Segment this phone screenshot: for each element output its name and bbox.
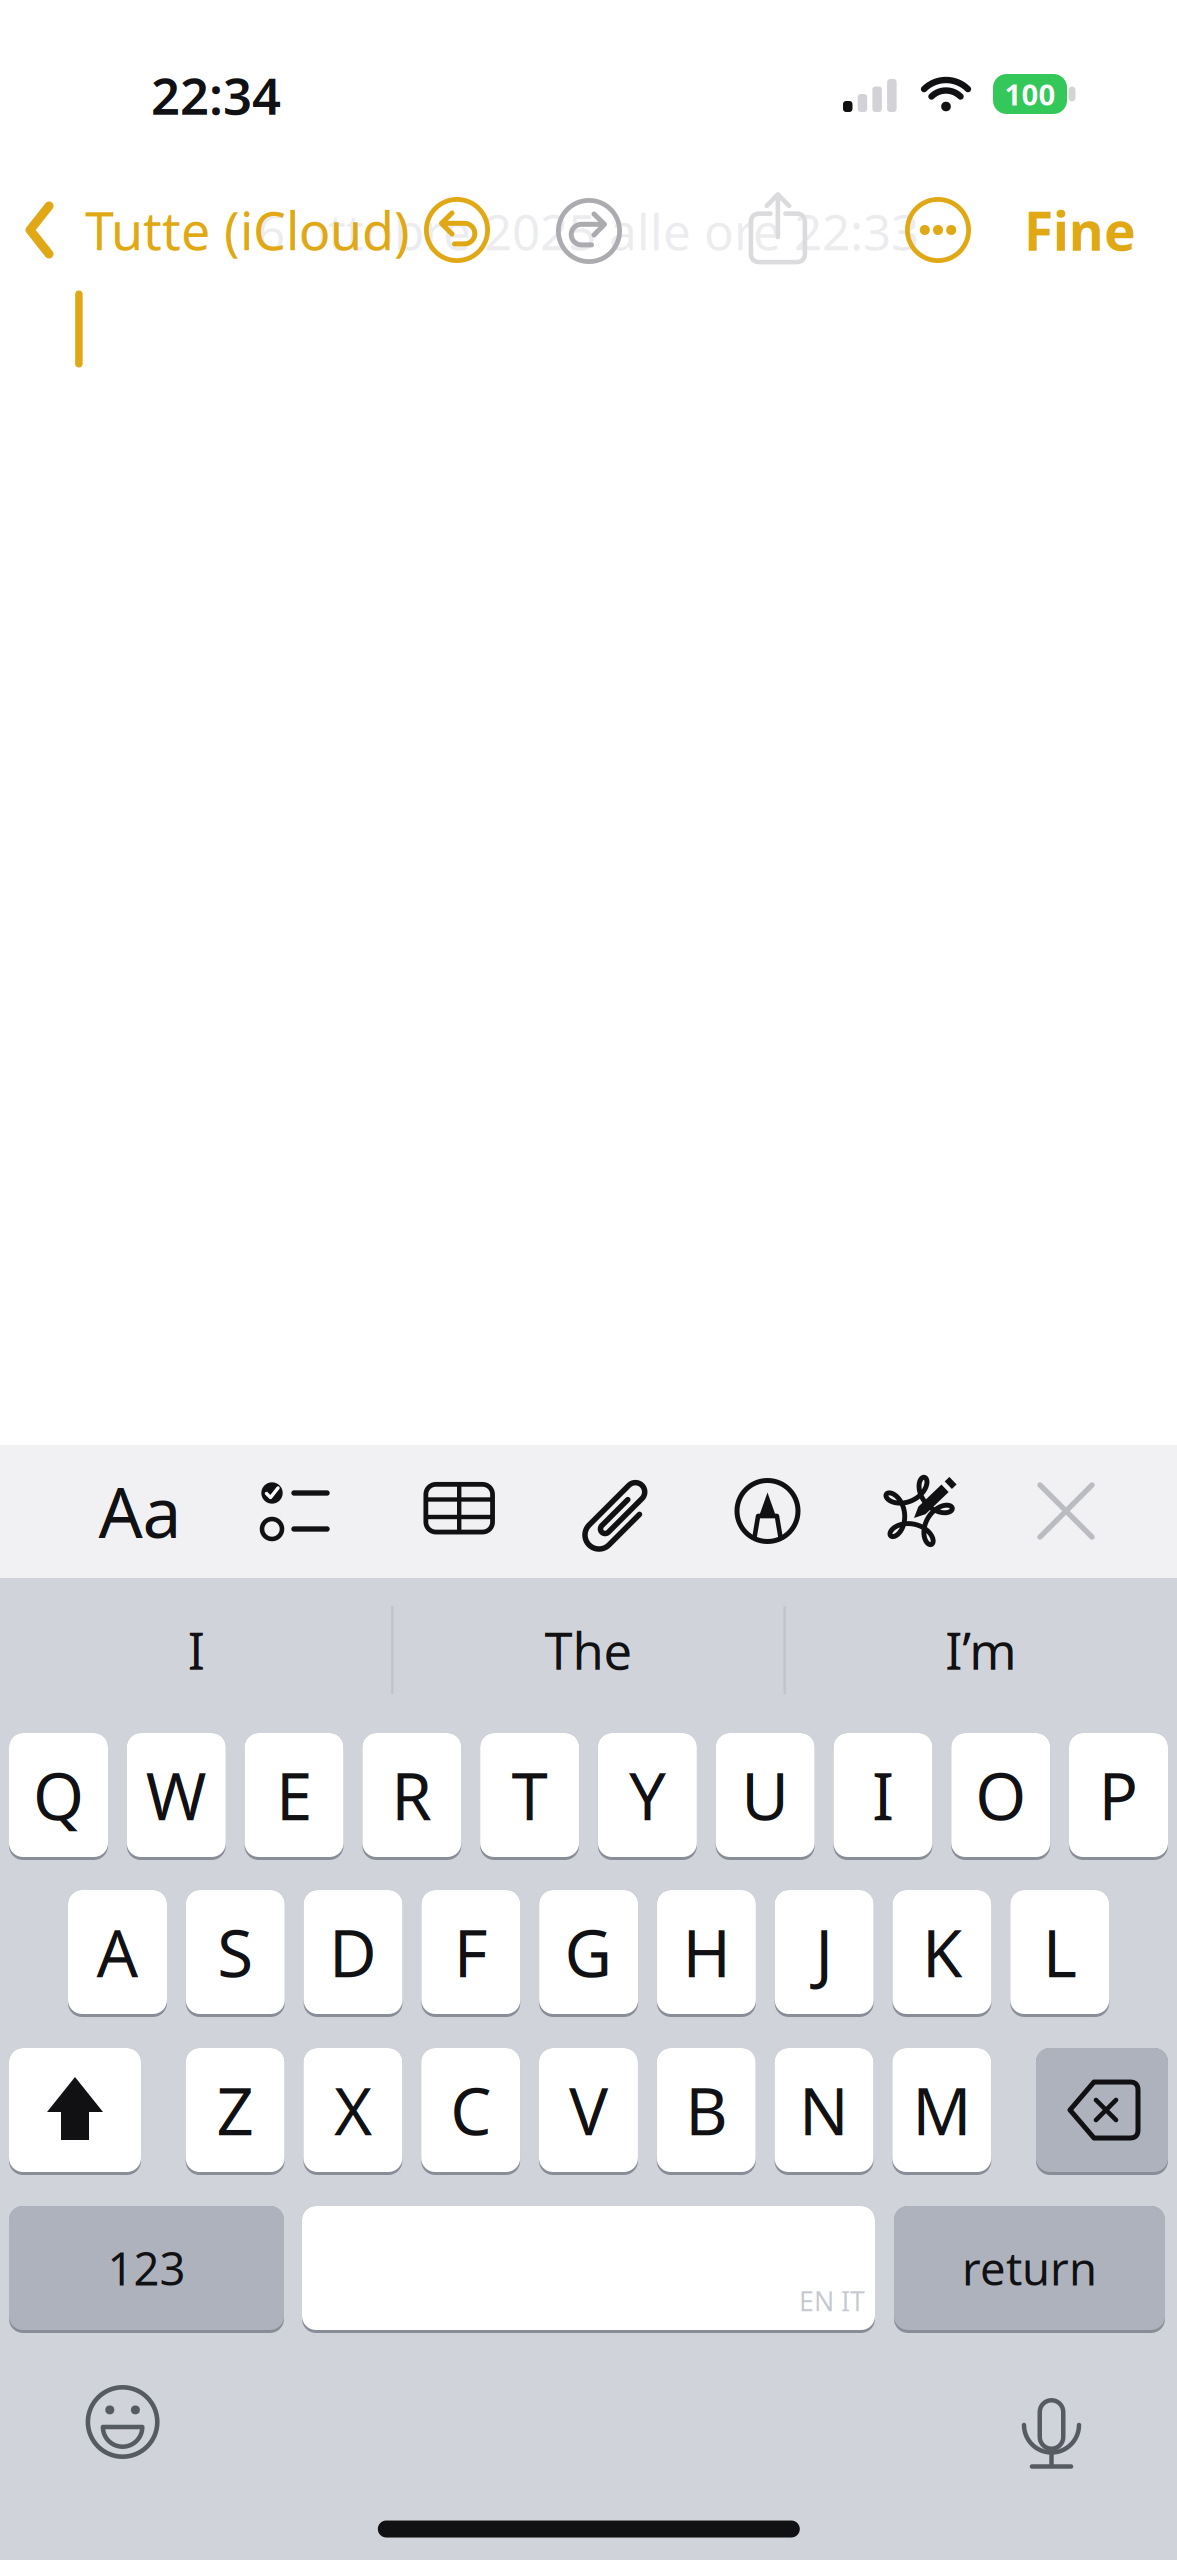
button[interactable]: V	[539, 2048, 638, 2175]
staticText: V	[569, 2067, 608, 2153]
button[interactable]: Format	[85, 1456, 195, 1566]
staticText: P	[1098, 1752, 1138, 1838]
button[interactable]: Emoji	[78, 2377, 168, 2467]
button[interactable]: R	[362, 1733, 461, 1860]
button[interactable]: Dictate	[1006, 2387, 1096, 2487]
button[interactable]: Checklist	[250, 1466, 340, 1556]
button[interactable]: O	[951, 1733, 1050, 1860]
staticText: Fine	[1024, 195, 1136, 265]
button[interactable]: Fine	[1024, 195, 1136, 265]
staticText: H	[682, 1909, 730, 1995]
staticText: G	[565, 1909, 613, 1995]
button[interactable]: shift	[9, 2048, 141, 2175]
button[interactable]: I	[833, 1733, 932, 1860]
button[interactable]: Y	[598, 1733, 697, 1860]
button[interactable]: 123	[9, 2206, 284, 2333]
button[interactable]: Tutte (iCloud)	[24, 194, 424, 266]
button[interactable]: K	[892, 1890, 991, 2017]
staticText: F	[454, 1909, 488, 1995]
button[interactable]: Q	[9, 1733, 108, 1860]
staticText: O	[975, 1752, 1026, 1838]
staticText: I’m	[945, 1616, 1016, 1684]
staticText: EN IT	[799, 2283, 865, 2319]
button[interactable]: Redo	[556, 198, 622, 264]
staticText: U	[741, 1752, 789, 1838]
staticText: 123	[107, 2238, 185, 2298]
staticText: M	[912, 2067, 971, 2153]
button[interactable]: U	[716, 1733, 815, 1860]
button[interactable]: S	[186, 1890, 285, 2017]
button[interactable]: J	[775, 1890, 874, 2017]
button[interactable]: Table	[419, 1478, 503, 1544]
staticText: X	[334, 2067, 372, 2153]
button[interactable]: Share	[748, 187, 808, 267]
staticText: A	[96, 1909, 138, 1995]
staticText: T	[512, 1752, 548, 1838]
staticText: C	[450, 2067, 491, 2153]
staticText: Aa	[98, 1465, 181, 1557]
staticText: The	[544, 1616, 632, 1684]
button[interactable]: T	[480, 1733, 579, 1860]
staticText: I	[872, 1752, 894, 1838]
button[interactable]: Attach	[576, 1470, 660, 1554]
staticText: E	[276, 1752, 312, 1838]
button[interactable]: The	[398, 1595, 778, 1705]
staticText: K	[922, 1909, 962, 1995]
button[interactable]: delete	[1036, 2048, 1168, 2175]
staticText: N	[799, 2067, 849, 2153]
button[interactable]: Undo	[424, 197, 490, 263]
staticText: I	[188, 1616, 205, 1684]
staticText: S	[217, 1909, 253, 1995]
staticText: Z	[217, 2067, 254, 2153]
button[interactable]: Z	[186, 2048, 285, 2175]
button[interactable]: M	[892, 2048, 991, 2175]
button[interactable]: W	[127, 1733, 226, 1860]
staticText: D	[329, 1909, 377, 1995]
button[interactable]: I’m	[791, 1595, 1171, 1705]
button[interactable]: C	[421, 2048, 520, 2175]
button[interactable]: Dismiss keyboard	[1028, 1473, 1104, 1549]
staticText: return	[962, 2238, 1097, 2298]
button[interactable]: E	[245, 1733, 344, 1860]
staticText: Tutte (iCloud)	[85, 195, 410, 265]
button[interactable]: More	[905, 197, 971, 263]
staticText: W	[146, 1752, 207, 1838]
staticText: Y	[629, 1752, 666, 1838]
button[interactable]: N	[774, 2048, 873, 2175]
button[interactable]: Writing Tools	[873, 1462, 969, 1558]
button[interactable]: D	[304, 1890, 403, 2017]
button[interactable]: A	[68, 1890, 167, 2017]
button[interactable]: B	[657, 2048, 756, 2175]
staticText: R	[391, 1752, 432, 1838]
button[interactable]: G	[539, 1890, 638, 2017]
button[interactable]: Markup	[729, 1473, 805, 1549]
button[interactable]: L	[1010, 1890, 1109, 2017]
button[interactable]: I	[6, 1595, 386, 1705]
staticText: B	[685, 2067, 727, 2153]
button[interactable]: F	[421, 1890, 520, 2017]
button[interactable]: P	[1069, 1733, 1168, 1860]
button[interactable]: X	[303, 2048, 402, 2175]
staticText: J	[815, 1909, 833, 1995]
staticText: L	[1043, 1909, 1077, 1995]
staticText: 6 ottobre 2025 alle ore 22:33	[257, 198, 919, 264]
button[interactable]: space	[302, 2206, 875, 2333]
staticText: 100	[1004, 74, 1055, 113]
staticText: 22:34	[151, 61, 281, 129]
button[interactable]: return	[894, 2206, 1165, 2333]
button[interactable]: H	[657, 1890, 756, 2017]
staticText: Q	[33, 1752, 84, 1838]
